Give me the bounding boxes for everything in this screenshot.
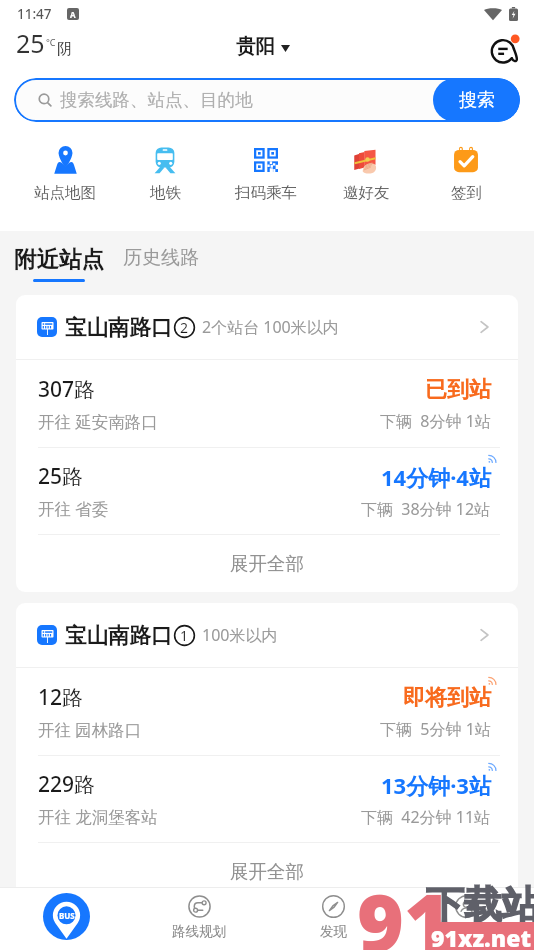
button[interactable]: 搜索线路、站点、目的地 [14,78,520,122]
staticText: 展开全部 [230,860,304,883]
staticText: 下辆 42分钟 11站 [361,806,491,828]
staticText: 307路 [38,375,96,404]
button[interactable]: 邀好友 [321,143,411,203]
staticText: 下辆 5分钟 1站 [380,718,491,740]
button[interactable]: 扫码乘车 [221,143,311,203]
staticText: 下辆 8分钟 1站 [380,410,491,432]
staticText: 宝山南路口 [65,314,173,341]
staticText: 91 [357,866,451,950]
staticText: 贵阳 [236,34,275,59]
button[interactable]: 地铁 [120,143,210,203]
button[interactable]: 实时公交 [43,893,90,940]
staticText: 2个站台 100米以内 [202,316,339,338]
button[interactable]: 12路 [16,668,518,755]
staticText: BUS [59,910,75,921]
button[interactable]: 历史线路 [123,252,199,276]
staticText: 即将到站 [403,684,491,712]
staticText: 2 [180,318,189,337]
button[interactable]: 展开全部 [16,535,518,592]
staticText: 下载站 [426,881,534,929]
staticText: 站点地图 [34,183,96,203]
staticText: 开往 龙洞堡客站 [38,805,158,828]
staticText: 我的 [453,923,480,940]
staticText: °C [46,36,56,48]
button[interactable]: 搜索 [433,78,520,122]
button[interactable]: 发现 [293,894,373,940]
staticText: 邀好友 [343,183,390,203]
button[interactable]: 站点地图 [20,143,110,203]
staticText: 宝山南路口 [65,622,173,649]
staticText: 91xz.net [431,922,531,950]
staticText: 搜索线路、站点、目的地 [60,89,253,111]
staticText: 13分钟·3站 [381,770,491,800]
staticText: 路线规划 [172,923,226,940]
staticText: 11:47 [17,5,52,23]
staticText: 扫码乘车 [235,183,297,203]
staticText: 阴 [57,40,72,59]
button[interactable]: 展开全部 [16,843,518,900]
button[interactable]: 宝山南路口 [16,295,518,359]
button[interactable]: 附近站点 [14,245,104,282]
staticText: 历史线路 [123,246,199,270]
button[interactable]: 307路 [16,360,518,447]
staticText: 开往 延安南路口 [38,410,158,433]
staticText: 100米以内 [202,624,278,646]
staticText: A [70,9,76,20]
staticText: 1 [180,626,189,645]
button[interactable]: 宝山南路口 [16,603,518,667]
button[interactable]: 229路 [16,756,518,842]
staticText: 开往 园林路口 [38,718,142,741]
button[interactable]: 签到 [421,143,511,203]
button[interactable]: 路线规划 [159,894,239,940]
staticText: 搜索 [459,89,495,112]
staticText: 25 [16,26,45,60]
staticText: 地铁 [150,183,181,203]
staticText: 14分钟·4站 [381,462,491,492]
staticText: 展开全部 [230,552,304,575]
staticText: 已到站 [425,376,491,404]
staticText: 附近站点 [14,245,104,273]
staticText: 签到 [451,183,482,203]
button[interactable]: 我的 [426,894,506,940]
button[interactable]: Messages [488,33,522,67]
staticText: 229路 [38,770,96,799]
staticText: 开往 省委 [38,497,109,520]
staticText: 25路 [38,462,84,491]
staticText: 12路 [38,683,84,712]
staticText: 下辆 38分钟 12站 [361,498,491,520]
staticText: 发现 [320,923,347,940]
button[interactable]: 25路 [16,448,518,534]
